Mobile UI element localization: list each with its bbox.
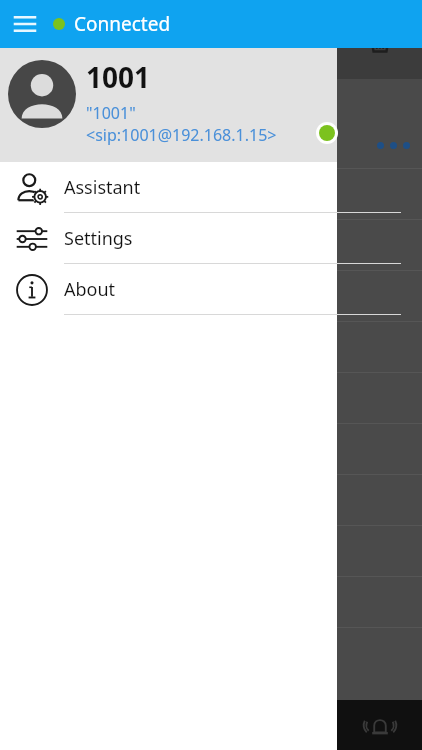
- button[interactable]: About: [0, 264, 337, 315]
- button[interactable]: Settings: [0, 213, 337, 264]
- staticText: Connected: [74, 11, 171, 37]
- button[interactable]: Open navigation drawer: [8, 7, 42, 41]
- staticText: Assistant: [64, 175, 141, 200]
- button[interactable]: [337, 220, 422, 271]
- button[interactable]: Assistant: [0, 162, 337, 213]
- button[interactable]: Delete: [337, 0, 422, 79]
- button[interactable]: More options: [337, 79, 422, 169]
- staticText: 1001: [86, 58, 151, 96]
- staticText: About: [64, 277, 116, 302]
- staticText: "1001": [86, 102, 136, 124]
- staticText: <sip:1001@192.168.1.15>: [86, 124, 277, 146]
- button[interactable]: Ringer: [337, 700, 422, 750]
- button[interactable]: [337, 271, 422, 322]
- button[interactable]: 1001: [0, 48, 337, 162]
- button[interactable]: [337, 169, 422, 220]
- staticText: Settings: [64, 226, 133, 251]
